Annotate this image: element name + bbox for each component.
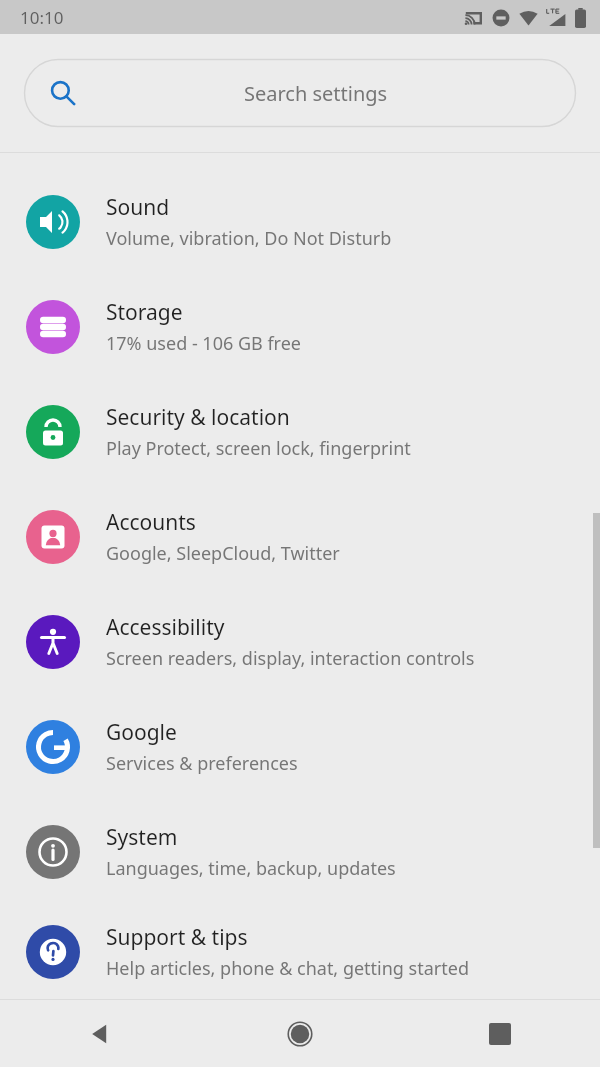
staticText: 17% used - 106 GB free [106, 331, 301, 356]
button[interactable]: Recent apps [400, 1000, 600, 1067]
staticText: Search settings [244, 80, 388, 107]
button[interactable]: Home [200, 1000, 400, 1067]
staticText: Screen readers, display, interaction con… [106, 646, 475, 671]
staticText: Languages, time, backup, updates [106, 856, 396, 881]
staticText: System [106, 823, 178, 852]
button[interactable]: Storage [0, 274, 600, 379]
button[interactable]: Back [0, 1000, 200, 1067]
button[interactable]: System [0, 799, 600, 904]
staticText: Storage [106, 298, 183, 327]
staticText: Google [106, 718, 177, 747]
staticText: Security & location [106, 403, 290, 432]
staticText: Help articles, phone & chat, getting sta… [106, 956, 469, 981]
staticText: Sound [106, 193, 170, 222]
button[interactable]: Support & tips [0, 904, 600, 999]
button[interactable]: Sound [0, 169, 600, 274]
staticText: Accounts [106, 508, 196, 537]
staticText: Support & tips [106, 923, 248, 952]
button[interactable]: Search settings [24, 59, 576, 127]
button[interactable]: Security & location [0, 379, 600, 484]
button[interactable]: Accessibility [0, 589, 600, 694]
button[interactable]: Google [0, 694, 600, 799]
staticText: Services & preferences [106, 751, 298, 776]
staticText: Play Protect, screen lock, fingerprint [106, 436, 411, 461]
button[interactable]: Accounts [0, 484, 600, 589]
staticText: 10:10 [20, 6, 64, 29]
staticText: Volume, vibration, Do Not Disturb [106, 226, 392, 251]
staticText: Accessibility [106, 613, 225, 642]
staticText: Google, SleepCloud, Twitter [106, 541, 340, 566]
